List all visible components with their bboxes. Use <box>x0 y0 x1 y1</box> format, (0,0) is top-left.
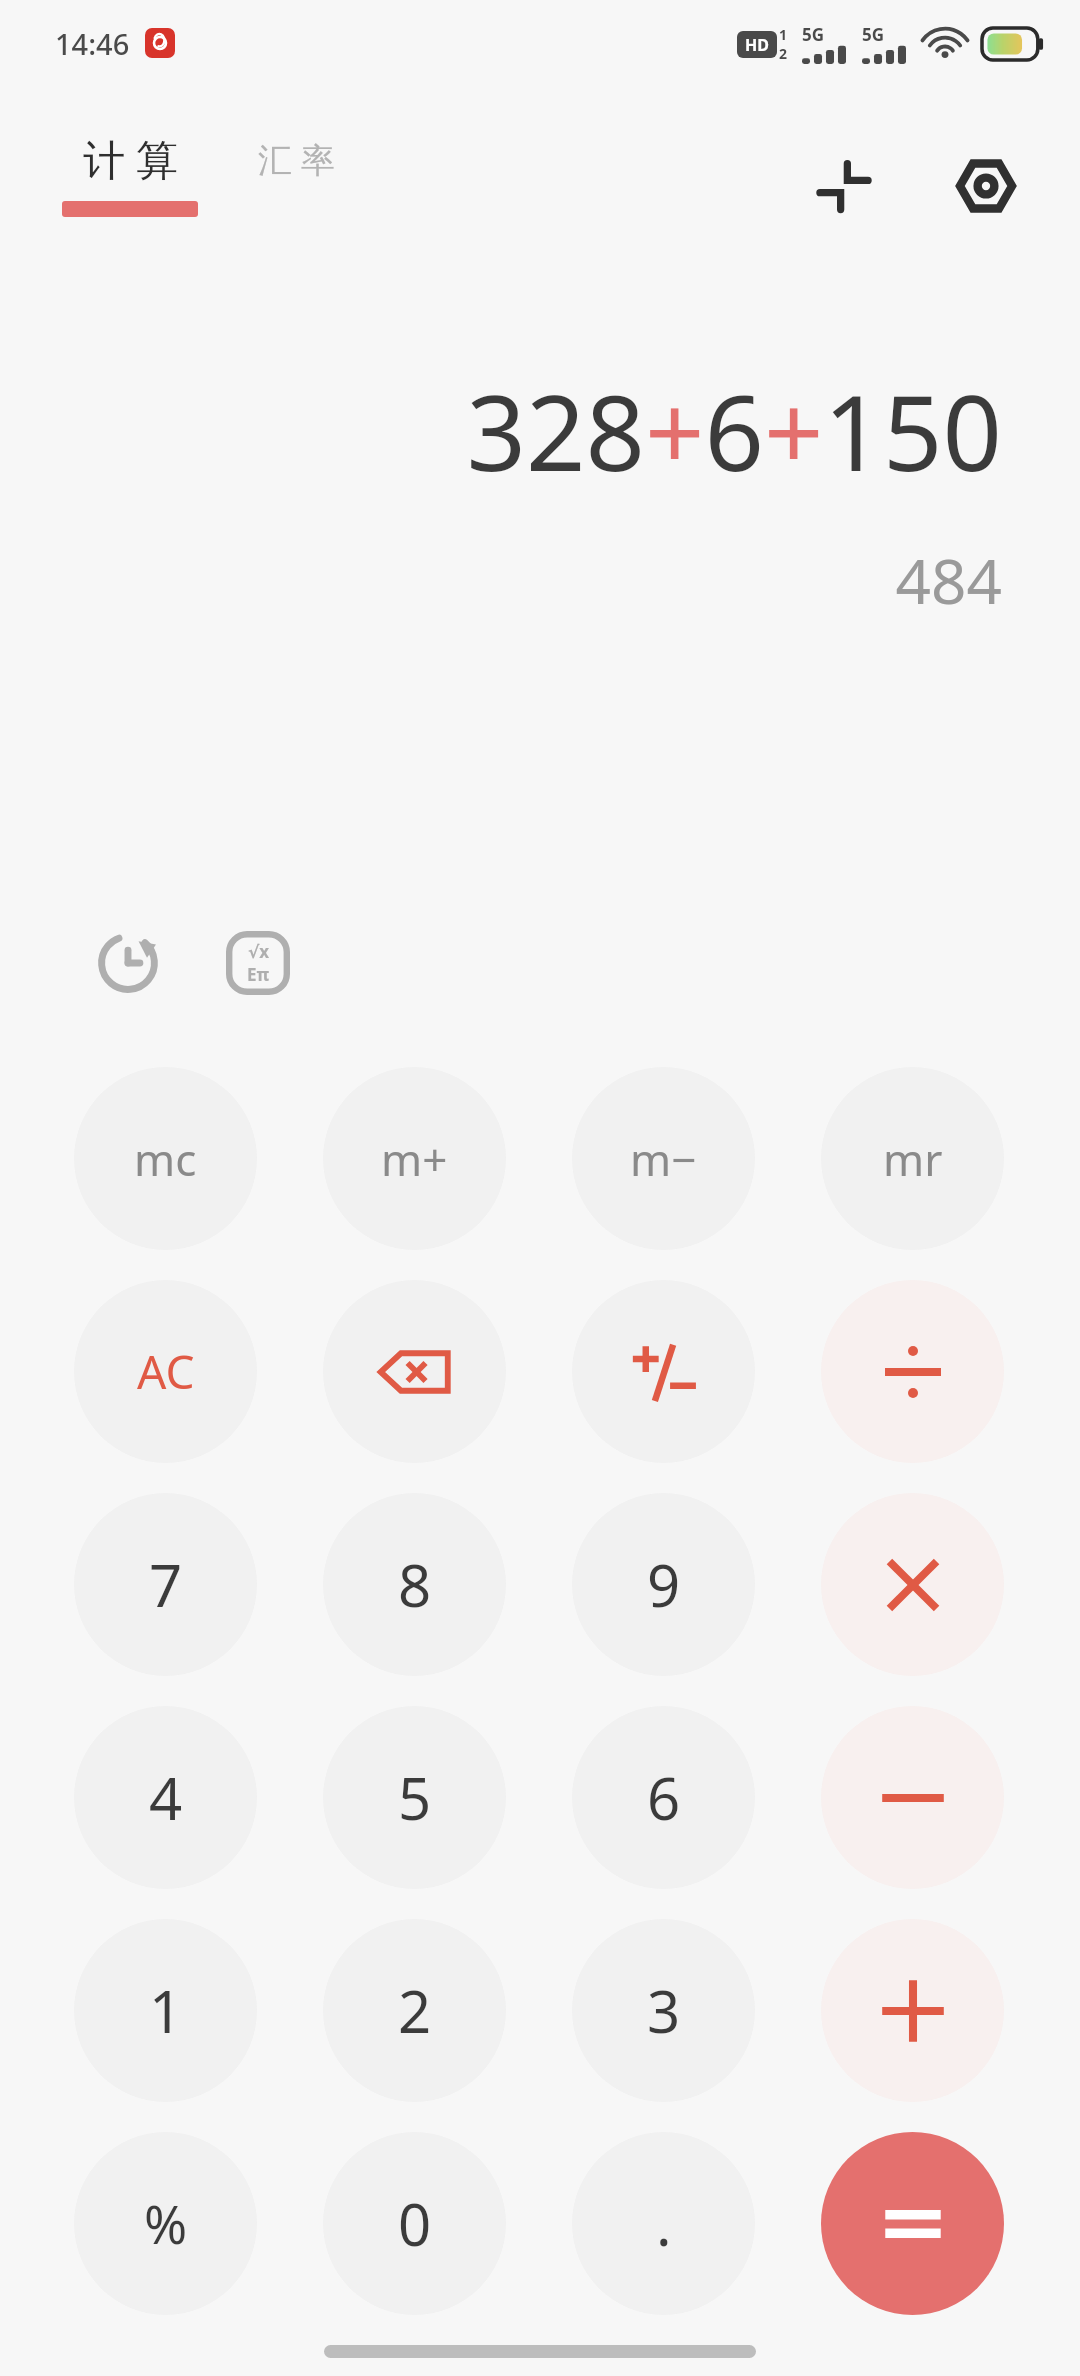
staticText: 7 <box>149 1545 183 1624</box>
staticText: 2 <box>398 1971 432 2050</box>
staticText: 4 <box>149 1758 183 1837</box>
button[interactable]: Expand <box>798 140 890 232</box>
staticText: HD <box>745 34 769 56</box>
staticText: 8 <box>398 1545 432 1624</box>
button[interactable]: Backspace <box>323 1280 506 1463</box>
button[interactable]: History <box>70 905 186 1021</box>
staticText: 汇 率 <box>258 136 335 182</box>
button[interactable]: 0 <box>323 2132 506 2315</box>
button[interactable]: 1 <box>74 1919 257 2102</box>
staticText: 1 <box>779 25 788 44</box>
staticText: 1 <box>149 1971 183 2050</box>
staticText: m+ <box>381 1129 448 1189</box>
button[interactable]: 7 <box>74 1493 257 1676</box>
button[interactable]: Plus minus <box>572 1280 755 1463</box>
button[interactable]: 8 <box>323 1493 506 1676</box>
staticText: 484 <box>895 538 1002 622</box>
button[interactable]: m+ <box>323 1067 506 1250</box>
button[interactable]: mr <box>821 1067 1004 1250</box>
button[interactable]: AC <box>74 1280 257 1463</box>
staticText: . <box>656 2184 672 2263</box>
button[interactable]: 2 <box>323 1919 506 2102</box>
staticText: % <box>144 2188 188 2259</box>
staticText: 5G <box>862 23 885 46</box>
staticText: 14:46 <box>55 24 130 63</box>
button[interactable]: 汇 率 <box>258 136 335 182</box>
staticText: AC <box>137 1340 195 1403</box>
staticText: 9 <box>647 1545 681 1624</box>
button[interactable]: Minus <box>821 1706 1004 1889</box>
button[interactable]: Equals <box>821 2132 1004 2315</box>
button[interactable]: . <box>572 2132 755 2315</box>
button[interactable]: Settings <box>940 140 1032 232</box>
button[interactable]: 3 <box>572 1919 755 2102</box>
staticText: 328+6+150 <box>466 360 1002 502</box>
button[interactable]: Divide <box>821 1280 1004 1463</box>
button[interactable]: 6 <box>572 1706 755 1889</box>
button[interactable]: Scientific <box>200 905 316 1021</box>
button[interactable]: 5 <box>323 1706 506 1889</box>
staticText: 0 <box>398 2184 432 2263</box>
staticText: 6 <box>647 1758 681 1837</box>
button[interactable]: m− <box>572 1067 755 1250</box>
button[interactable]: Multiply <box>821 1493 1004 1676</box>
staticText: 计 算 <box>83 130 178 187</box>
staticText: mr <box>883 1129 943 1189</box>
staticText: 5 <box>398 1758 432 1837</box>
staticText: √x <box>248 940 270 963</box>
button[interactable]: mc <box>74 1067 257 1250</box>
staticText: mc <box>134 1129 197 1189</box>
button[interactable]: % <box>74 2132 257 2315</box>
staticText: m− <box>630 1129 697 1189</box>
button[interactable]: 9 <box>572 1493 755 1676</box>
staticText: Eπ <box>247 963 270 986</box>
button[interactable]: 计 算 <box>62 130 198 217</box>
staticText: 5G <box>802 23 825 46</box>
staticText: 2 <box>779 44 788 63</box>
staticText: 3 <box>647 1971 681 2050</box>
button[interactable]: 4 <box>74 1706 257 1889</box>
button[interactable]: Plus <box>821 1919 1004 2102</box>
